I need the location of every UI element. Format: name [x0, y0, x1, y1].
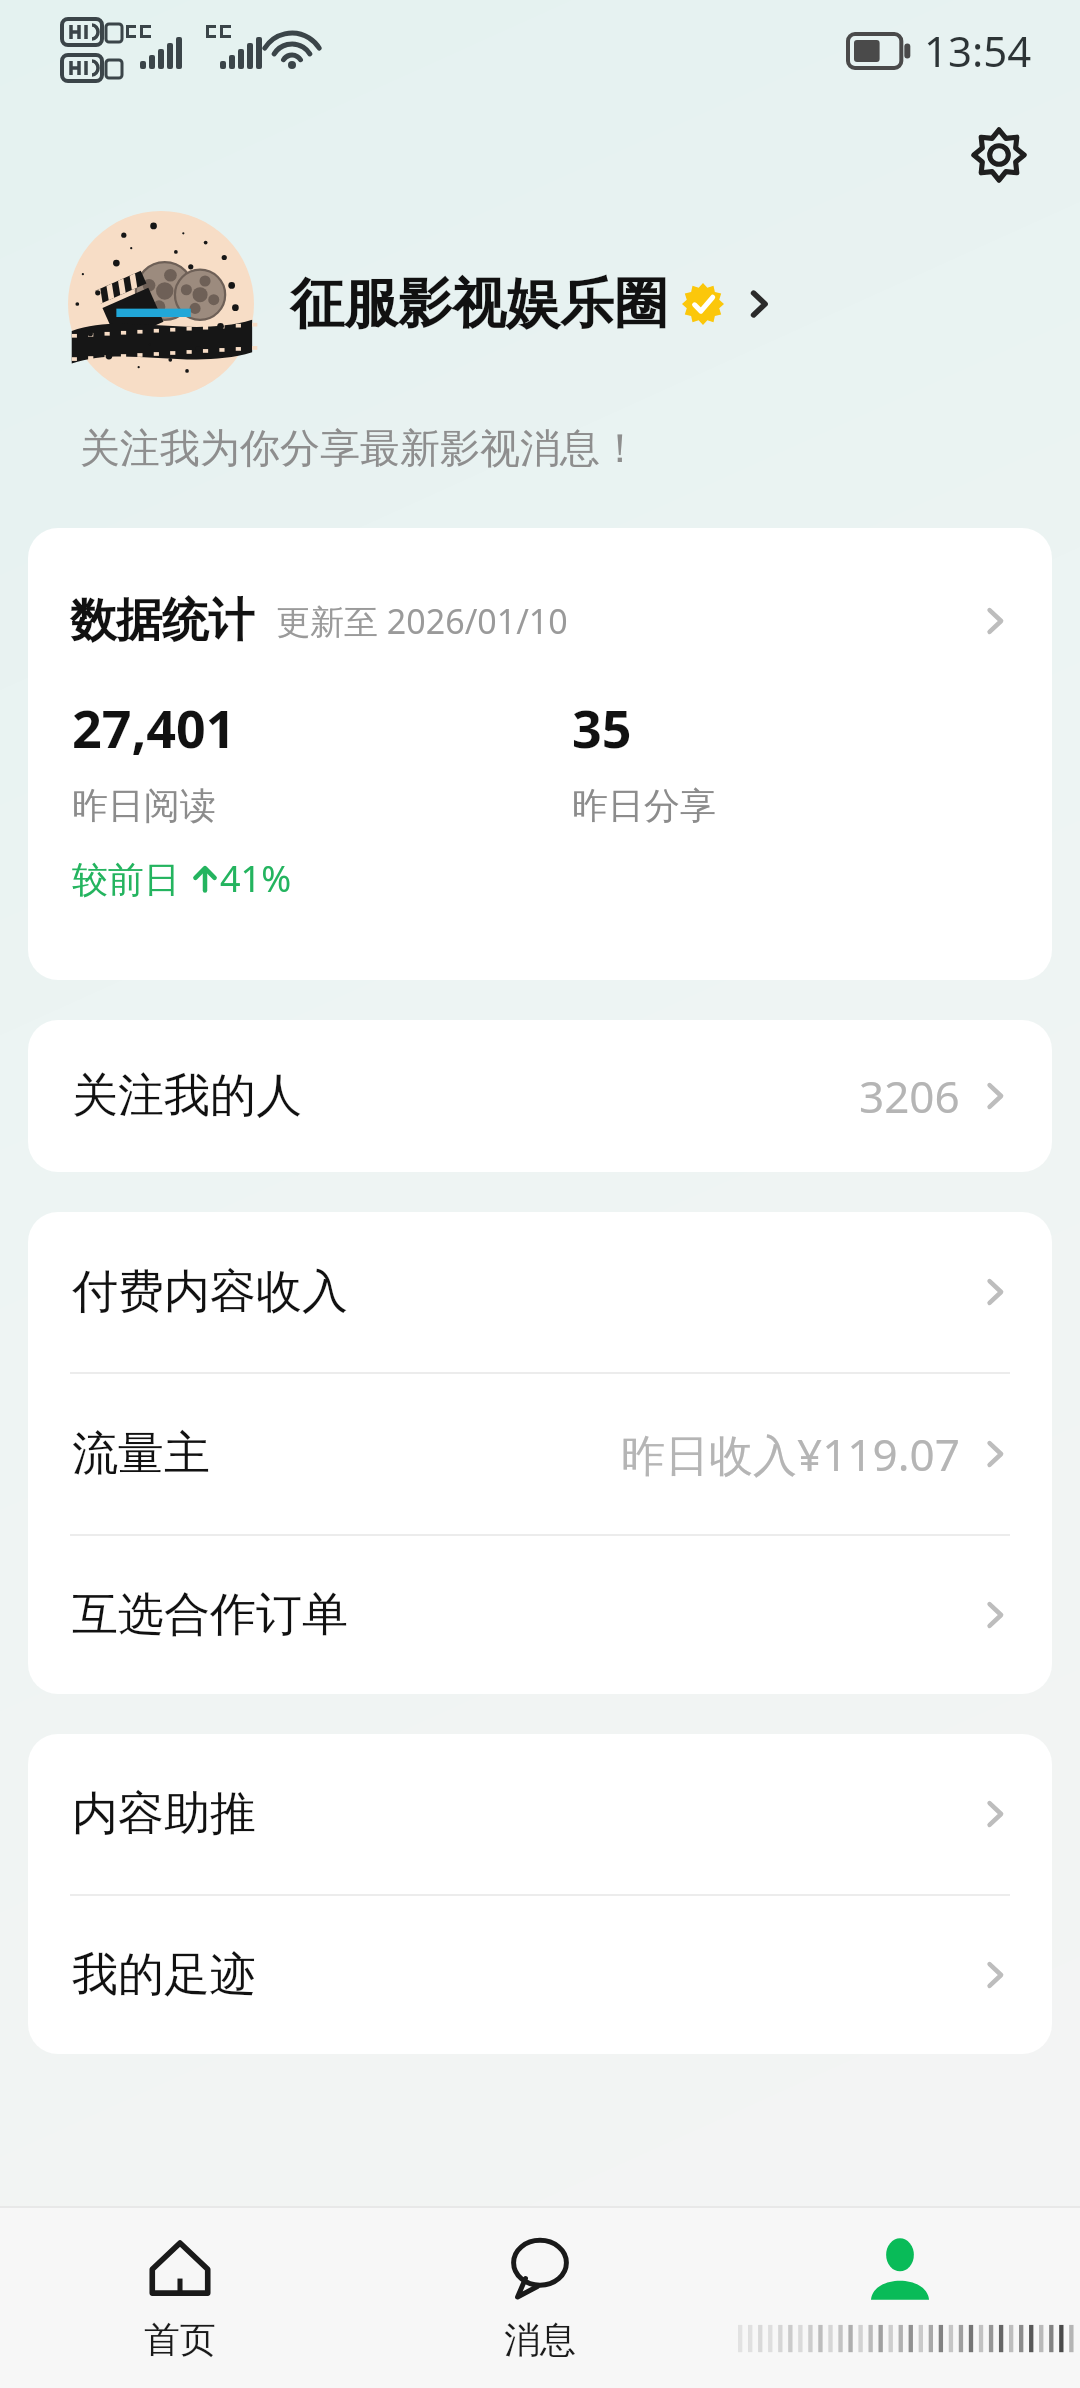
staticText: 内容助推 [72, 1785, 256, 1843]
button[interactable]: Settings [958, 114, 1040, 196]
button[interactable]: 消息 [360, 2208, 720, 2388]
button[interactable]: 内容助推 [28, 1734, 1052, 1894]
staticText: 昨日分享 [572, 783, 716, 828]
button[interactable]: 付费内容收入 [28, 1212, 1052, 1372]
staticText: 数据统计 [70, 592, 254, 650]
staticText: 流量主 [72, 1425, 210, 1483]
staticText: 更新至 2026/01/10 [276, 598, 568, 644]
button[interactable]: 首页 [0, 2208, 360, 2388]
staticText: 首页 [144, 2317, 216, 2362]
staticText: 27,401 [72, 692, 236, 763]
staticText: 较前日 [72, 854, 190, 903]
button[interactable]: 数据统计 [28, 576, 1052, 666]
staticText: 关注我为你分享最新影视消息！ [80, 423, 640, 473]
staticText: 昨日收入¥119.07 [621, 1424, 960, 1484]
staticText: 互选合作订单 [72, 1586, 348, 1644]
staticText: 35 [572, 692, 632, 763]
button[interactable]: 我的足迹 [28, 1896, 1052, 2054]
staticText: 我的足迹 [72, 1946, 256, 2004]
staticText: 征服影视娱乐圈 [290, 270, 668, 338]
staticText: 3206 [859, 1066, 960, 1126]
staticText: 41% [220, 854, 292, 903]
staticText: 昨日阅读 [72, 783, 216, 828]
staticText: 关注我的人 [72, 1067, 302, 1125]
button[interactable]: 互选合作订单 [28, 1536, 1052, 1694]
button[interactable]: 征服影视娱乐圈 [0, 210, 1080, 398]
button[interactable] [720, 2208, 1080, 2388]
button[interactable]: 关注我的人 [28, 1020, 1052, 1172]
staticText: 消息 [504, 2317, 576, 2362]
button[interactable]: 流量主 [28, 1374, 1052, 1534]
staticText: 13:54 [924, 22, 1032, 79]
staticText: 付费内容收入 [72, 1263, 348, 1321]
